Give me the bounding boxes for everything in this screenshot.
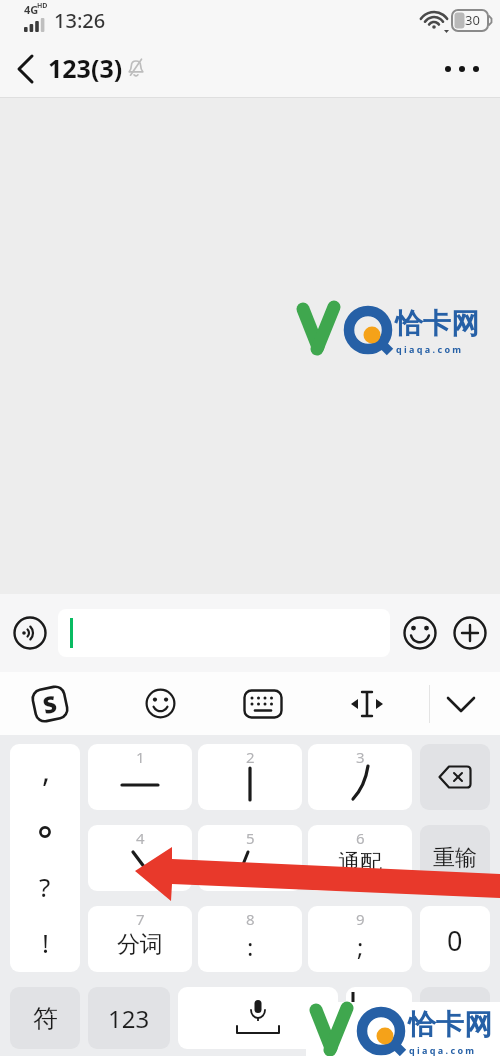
- staticText: 1: [136, 747, 145, 767]
- button[interactable]: 7: [88, 906, 192, 972]
- button[interactable]: 5: [198, 825, 302, 891]
- staticText: 30: [465, 11, 480, 29]
- button[interactable]: 123: [88, 987, 170, 1049]
- button[interactable]: [12, 55, 40, 83]
- staticText: HD: [37, 1, 48, 11]
- button[interactable]: 符: [10, 987, 80, 1049]
- staticText: 123(3): [48, 51, 123, 85]
- staticText: S: [40, 687, 60, 720]
- button[interactable]: [420, 744, 490, 810]
- staticText: 123: [108, 1002, 150, 1035]
- staticText: 恰卡网: [408, 1007, 492, 1042]
- button[interactable]: 重输: [420, 825, 490, 891]
- button[interactable]: [440, 54, 484, 84]
- staticText: 13:26: [54, 7, 106, 34]
- staticText: 5: [246, 828, 255, 848]
- button[interactable]: 3: [308, 744, 412, 810]
- staticText: 重输: [433, 844, 477, 872]
- staticText: 恰卡网: [395, 306, 479, 341]
- staticText: 2: [246, 747, 255, 767]
- staticText: 0: [447, 922, 463, 959]
- staticText: !: [42, 925, 49, 960]
- staticText: ,: [42, 750, 51, 791]
- staticText: 符: [33, 1003, 58, 1034]
- staticText: 3: [356, 747, 365, 767]
- button[interactable]: ,: [10, 744, 80, 972]
- button[interactable]: [420, 987, 490, 1049]
- button[interactable]: S: [26, 680, 74, 728]
- button[interactable]: [243, 689, 283, 719]
- staticText: ?: [39, 869, 51, 904]
- button[interactable]: [403, 616, 437, 650]
- button[interactable]: [178, 987, 338, 1049]
- staticText: 8: [246, 909, 255, 929]
- button[interactable]: [453, 616, 487, 650]
- staticText: 通配: [338, 849, 382, 877]
- staticText: 6: [356, 828, 365, 848]
- staticText: 4: [136, 828, 145, 848]
- button[interactable]: 0: [420, 906, 490, 972]
- button[interactable]: 4: [88, 825, 192, 891]
- button[interactable]: 8: [198, 906, 302, 972]
- staticText: 9: [356, 909, 365, 929]
- button[interactable]: 1: [88, 744, 192, 810]
- button[interactable]: [346, 987, 412, 1049]
- button[interactable]: [445, 689, 477, 719]
- button[interactable]: [145, 688, 176, 719]
- button[interactable]: 6: [308, 825, 412, 891]
- button[interactable]: 9: [308, 906, 412, 972]
- button[interactable]: [349, 689, 385, 719]
- staticText: 7: [136, 909, 145, 929]
- staticText: 4G: [24, 2, 39, 17]
- button[interactable]: [13, 616, 47, 650]
- staticText: :: [247, 930, 254, 963]
- staticText: q i a q a . c o m: [396, 343, 462, 355]
- staticText: ;: [357, 930, 364, 963]
- staticText: q i a q a . c o m: [409, 1044, 475, 1056]
- button[interactable]: 2: [198, 744, 302, 810]
- button[interactable]: [58, 609, 390, 657]
- staticText: 分词: [117, 930, 163, 959]
